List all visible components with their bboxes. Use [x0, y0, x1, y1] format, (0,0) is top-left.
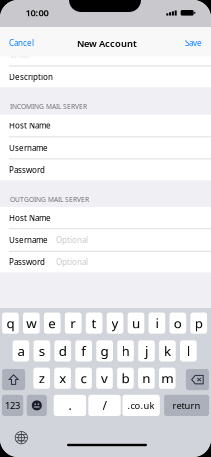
button[interactable]: r [0, 0, 211, 457]
staticText: c [81, 369, 87, 387]
staticText: Email [10, 49, 29, 60]
staticText: 10:00 [25, 6, 48, 19]
staticText: j [145, 342, 148, 360]
button[interactable]: d [0, 0, 211, 457]
staticText: n [142, 369, 150, 387]
button[interactable]: Host Name [0, 0, 211, 457]
staticText: i [155, 314, 158, 332]
button[interactable]: Username [0, 0, 211, 457]
button[interactable]: x [0, 0, 211, 457]
button[interactable]: .co.uk [0, 0, 211, 457]
staticText: return [173, 399, 201, 412]
staticText: w [26, 314, 36, 332]
button[interactable]: m [0, 0, 211, 457]
button[interactable]: c [0, 0, 211, 457]
button[interactable]: return [0, 0, 211, 457]
staticText: s [39, 342, 45, 360]
staticText: k [164, 342, 171, 360]
staticText: e [48, 314, 56, 332]
staticText: Description [9, 72, 53, 82]
button[interactable]: t [0, 0, 211, 457]
staticText: . [68, 397, 71, 413]
staticText: q [6, 314, 14, 332]
staticText: f [81, 342, 86, 360]
staticText: Cancel [9, 37, 34, 48]
staticText: x [59, 369, 66, 387]
button[interactable]: v [0, 0, 211, 457]
button[interactable]: Cancel [0, 0, 211, 457]
button[interactable]: a [0, 0, 211, 457]
staticText: / [102, 397, 106, 413]
button[interactable]: k [0, 0, 211, 457]
button[interactable]: u [0, 0, 211, 457]
button[interactable]: w [0, 0, 211, 457]
staticText: Save [185, 37, 202, 48]
button[interactable]: Password [0, 0, 211, 457]
button[interactable]: y [0, 0, 211, 457]
staticText: OUTGOING MAIL SERVER [10, 195, 89, 204]
button[interactable]: i [0, 0, 211, 457]
button[interactable]: l [0, 0, 211, 457]
button[interactable]: f [0, 0, 211, 457]
staticText: Password [9, 165, 45, 175]
button[interactable]: . [0, 0, 211, 457]
button[interactable]: p [0, 0, 211, 457]
button[interactable]: q [0, 0, 211, 457]
staticText: v [101, 369, 108, 387]
staticText: p [195, 314, 203, 332]
button[interactable]: Username [0, 0, 211, 457]
staticText: Optional [56, 234, 88, 245]
button[interactable]: Emoji [0, 0, 211, 457]
staticText: 123 [5, 399, 20, 412]
staticText: m [161, 369, 173, 387]
staticText: .co.uk [128, 399, 155, 412]
button[interactable]: n [0, 0, 211, 457]
button[interactable]: j [0, 0, 211, 457]
staticText: New Account [77, 37, 137, 50]
staticText: Password [9, 257, 45, 267]
staticText: u [132, 314, 140, 332]
staticText: Host Name [9, 212, 51, 223]
button[interactable]: z [0, 0, 211, 457]
button[interactable]: e [0, 0, 211, 457]
staticText: l [187, 342, 190, 360]
staticText: g [101, 342, 109, 360]
button[interactable]: h [0, 0, 211, 457]
button[interactable]: Save [0, 0, 211, 457]
staticText: b [121, 369, 129, 387]
button[interactable]: s [0, 0, 211, 457]
staticText: Username [9, 234, 48, 245]
staticText: h [121, 342, 129, 360]
button[interactable]: / [0, 0, 211, 457]
button[interactable]: o [0, 0, 211, 457]
staticText: Username [9, 143, 48, 153]
staticText: y [111, 314, 118, 332]
button[interactable]: Shift [0, 0, 211, 457]
button[interactable]: Switch keyboard [0, 0, 211, 457]
button[interactable]: b [0, 0, 211, 457]
staticText: t [92, 314, 97, 332]
button[interactable]: g [0, 0, 211, 457]
staticText: Host Name [9, 120, 51, 131]
button[interactable]: Description [0, 0, 211, 457]
staticText: a [17, 342, 24, 360]
button[interactable]: 123 [0, 0, 211, 457]
staticText: d [59, 342, 67, 360]
staticText: Optional [56, 257, 88, 267]
staticText: o [174, 314, 182, 332]
staticText: z [39, 369, 45, 387]
staticText: INCOMING MAIL SERVER [10, 102, 87, 111]
button[interactable]: Password [0, 0, 211, 457]
button[interactable]: Delete [0, 0, 211, 457]
button[interactable]: Host Name [0, 0, 211, 457]
staticText: r [70, 314, 76, 332]
